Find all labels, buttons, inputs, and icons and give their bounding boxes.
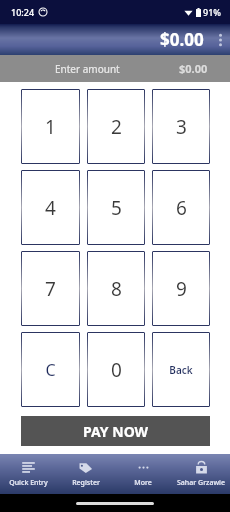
staticText: $0.00 bbox=[179, 61, 208, 76]
staticText: 1 bbox=[45, 114, 56, 140]
staticText: 91% bbox=[203, 6, 221, 18]
button[interactable]: Quick Entry bbox=[0, 454, 57, 494]
button[interactable]: Enter amount bbox=[0, 55, 230, 82]
button[interactable]: 2 bbox=[87, 89, 145, 164]
staticText: 7 bbox=[45, 276, 56, 302]
staticText: 2 bbox=[111, 114, 122, 140]
button[interactable]: 3 bbox=[152, 89, 210, 164]
staticText: 0 bbox=[111, 357, 122, 383]
button[interactable]: More options bbox=[210, 24, 230, 55]
staticText: Sahar Grzawie bbox=[177, 478, 225, 488]
staticText: PAY NOW bbox=[83, 422, 149, 441]
button[interactable]: More bbox=[114, 454, 172, 494]
staticText: C bbox=[45, 359, 56, 381]
staticText: 6 bbox=[176, 195, 187, 221]
staticText: More bbox=[134, 478, 152, 488]
staticText: $0.00 bbox=[160, 28, 204, 51]
button[interactable]: 9 bbox=[152, 251, 210, 326]
staticText: 3 bbox=[176, 114, 187, 140]
staticText: Back bbox=[169, 363, 193, 377]
button[interactable]: PAY NOW bbox=[21, 416, 210, 446]
button[interactable]: 1 bbox=[21, 89, 80, 164]
button[interactable]: 4 bbox=[21, 170, 80, 245]
staticText: 8 bbox=[111, 276, 122, 302]
staticText: Register bbox=[72, 478, 100, 488]
staticText: Quick Entry bbox=[9, 478, 48, 488]
staticText: Enter amount bbox=[55, 62, 120, 76]
button[interactable]: 8 bbox=[87, 251, 145, 326]
button[interactable]: C bbox=[21, 332, 80, 407]
button[interactable]: 5 bbox=[87, 170, 145, 245]
staticText: 5 bbox=[111, 195, 122, 221]
button[interactable]: Register bbox=[57, 454, 114, 494]
staticText: 10:24 bbox=[11, 6, 35, 18]
button[interactable]: Sahar Grzawie bbox=[172, 454, 230, 494]
button[interactable]: 0 bbox=[87, 332, 145, 407]
button[interactable]: 6 bbox=[152, 170, 210, 245]
button[interactable]: Back bbox=[152, 332, 210, 407]
staticText: 4 bbox=[45, 195, 56, 221]
button[interactable]: 7 bbox=[21, 251, 80, 326]
staticText: 9 bbox=[176, 276, 187, 302]
